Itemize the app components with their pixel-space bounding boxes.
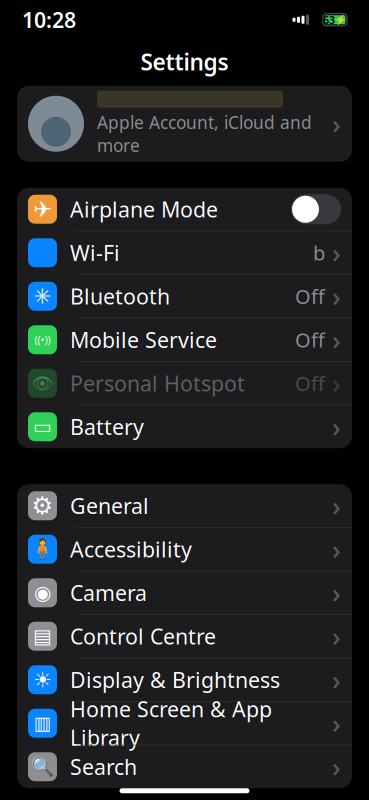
staticText: Accessibility <box>70 535 192 563</box>
staticText: ((•)) <box>34 333 50 347</box>
staticText: Wi-Fi <box>70 239 120 267</box>
button[interactable]: ◉ <box>17 571 352 614</box>
staticText: Off <box>295 283 325 310</box>
button[interactable]: ✈ <box>17 188 352 231</box>
staticText: › <box>332 531 341 567</box>
staticText: Home Screen & App Library <box>70 695 272 752</box>
button[interactable]: 👁 <box>17 362 352 405</box>
button[interactable]: ⚙ <box>17 484 352 527</box>
staticText: ◉ <box>34 581 51 604</box>
button[interactable]: ((•)) <box>17 318 352 361</box>
staticText: Off <box>295 370 325 397</box>
staticText: Airplane Mode <box>70 195 218 223</box>
staticText: Apple Account, iCloud and more <box>97 111 312 157</box>
button[interactable]: Apple Account, iCloud and more <box>17 86 352 162</box>
staticText: › <box>332 322 341 357</box>
staticText: b <box>313 239 325 266</box>
staticText: Search <box>70 753 137 781</box>
staticText: Bluetooth <box>70 282 170 310</box>
button[interactable]: ✳ <box>17 275 352 318</box>
staticText: ⚙ <box>31 492 53 519</box>
button[interactable]: ☀ <box>17 658 352 701</box>
staticText: › <box>332 235 341 270</box>
staticText: Mobile Service <box>70 326 217 354</box>
button[interactable]: ▤ <box>17 615 352 658</box>
staticText: Display & Brightness <box>70 666 280 694</box>
staticText: Control Centre <box>70 622 216 650</box>
staticText: ✈ <box>33 196 52 222</box>
staticText: ⚡ <box>335 14 347 25</box>
button[interactable]: ▥ <box>17 702 352 745</box>
button[interactable]: 🧍 <box>17 528 352 571</box>
staticText: › <box>332 409 341 444</box>
staticText: ✳ <box>33 284 51 308</box>
staticText: › <box>332 488 341 523</box>
button[interactable]: 🔍 <box>17 745 352 788</box>
staticText: 63 <box>323 13 335 27</box>
staticText: › <box>332 662 341 697</box>
staticText: Personal Hotspot <box>70 369 245 397</box>
staticText: › <box>332 106 341 141</box>
staticText: 🔍 <box>31 756 54 777</box>
staticText: 🧍 <box>30 538 55 561</box>
staticText: › <box>332 618 341 654</box>
staticText: Off <box>295 326 325 353</box>
staticText: ☀ <box>33 668 52 692</box>
button[interactable]: 􀙇 <box>17 231 352 274</box>
staticText: Camera <box>70 579 147 607</box>
staticText: › <box>332 705 341 741</box>
staticText: ▤ <box>33 625 52 648</box>
staticText: 10:28 <box>22 6 76 34</box>
staticText: › <box>332 575 341 610</box>
staticText: ▥ <box>33 713 51 734</box>
staticText: › <box>332 749 341 784</box>
staticText: ▭ <box>33 415 52 438</box>
staticText: 👁 <box>31 373 53 393</box>
staticText: › <box>332 278 341 314</box>
staticText: Battery <box>70 413 144 441</box>
staticText: › <box>332 365 341 401</box>
button[interactable]: ▭ <box>17 405 352 448</box>
staticText: Settings <box>140 47 228 77</box>
staticText: General <box>70 492 149 520</box>
